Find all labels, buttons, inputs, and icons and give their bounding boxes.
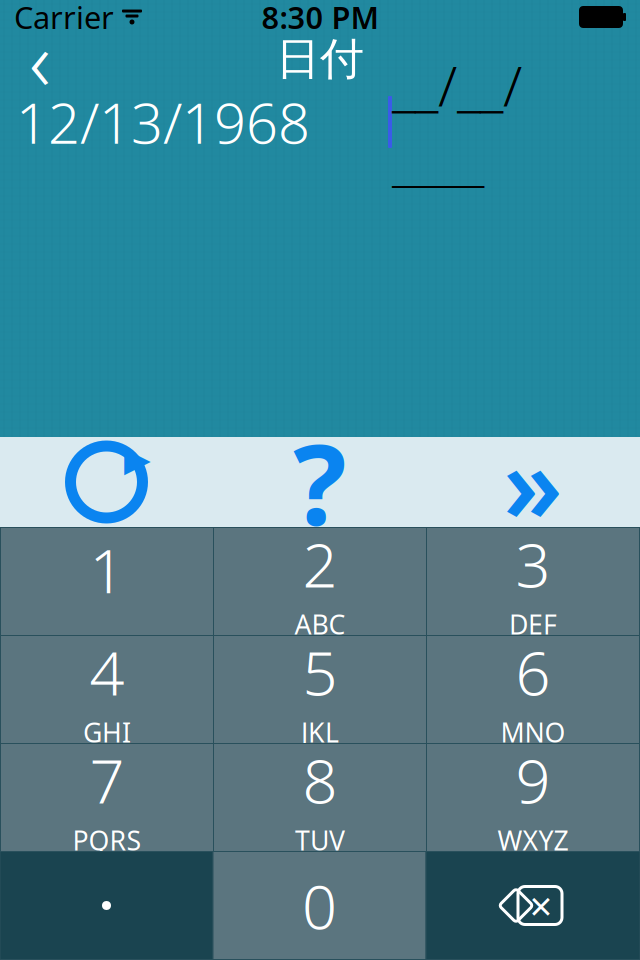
staticText: GHI: [83, 714, 131, 750]
staticText: 8: [302, 739, 337, 820]
staticText: 日付: [276, 32, 364, 86]
staticText: 5: [302, 631, 337, 712]
button[interactable]: 8: [213, 743, 426, 851]
button[interactable]: Back: [12, 31, 68, 87]
button[interactable]: Next: [426, 437, 640, 527]
button[interactable]: 4: [0, 635, 213, 743]
button[interactable]: 2: [213, 527, 426, 635]
button[interactable]: 3: [426, 527, 639, 635]
button[interactable]: 6: [426, 635, 639, 743]
button[interactable]: Reset: [0, 437, 213, 527]
staticText: ABC: [294, 606, 345, 642]
staticText: 9: [515, 739, 550, 820]
staticText: PQRS: [72, 822, 141, 858]
staticText: 1: [89, 529, 124, 610]
staticText: ×: [529, 879, 552, 932]
button[interactable]: Delete: [426, 851, 640, 959]
button[interactable]: 7: [0, 743, 213, 851]
staticText: JKL: [301, 714, 339, 750]
staticText: 6: [515, 631, 550, 712]
staticText: ▶: [124, 439, 151, 479]
button[interactable]: 1: [0, 527, 213, 635]
button[interactable]: 9: [426, 743, 639, 851]
staticText: 12/13/1968: [16, 85, 310, 159]
staticText: WXYZ: [497, 822, 568, 858]
staticText: Carrier: [14, 0, 114, 37]
staticText: 2: [302, 523, 337, 604]
button[interactable]: Decimal point: [0, 851, 213, 959]
staticText: TUV: [295, 822, 345, 858]
button[interactable]: 0: [213, 851, 426, 959]
staticText: __/__/____: [392, 48, 522, 196]
staticText: 3: [515, 523, 550, 604]
button[interactable]: 5: [213, 635, 426, 743]
staticText: DEF: [509, 606, 557, 642]
staticText: 0: [302, 865, 337, 946]
staticText: 7: [89, 739, 124, 820]
staticText: ?: [293, 408, 346, 556]
staticText: 4: [89, 631, 124, 712]
staticText: ‹: [29, 4, 51, 114]
staticText: 8:30 PM: [261, 0, 378, 37]
staticText: MNO: [500, 714, 565, 750]
button[interactable]: Help: [213, 437, 426, 527]
staticText: »: [503, 413, 563, 551]
